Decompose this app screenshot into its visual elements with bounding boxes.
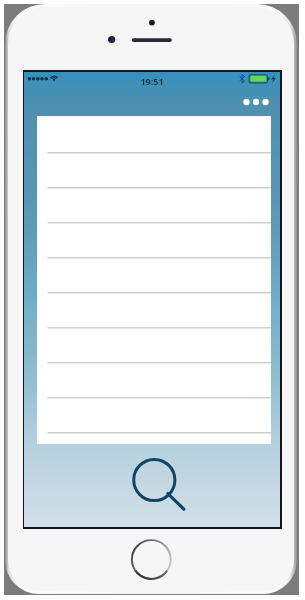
button[interactable]: More options [238, 84, 274, 120]
staticText: 19:51 [140, 75, 164, 87]
button[interactable] [37, 116, 271, 444]
button[interactable]: Search [127, 451, 195, 519]
